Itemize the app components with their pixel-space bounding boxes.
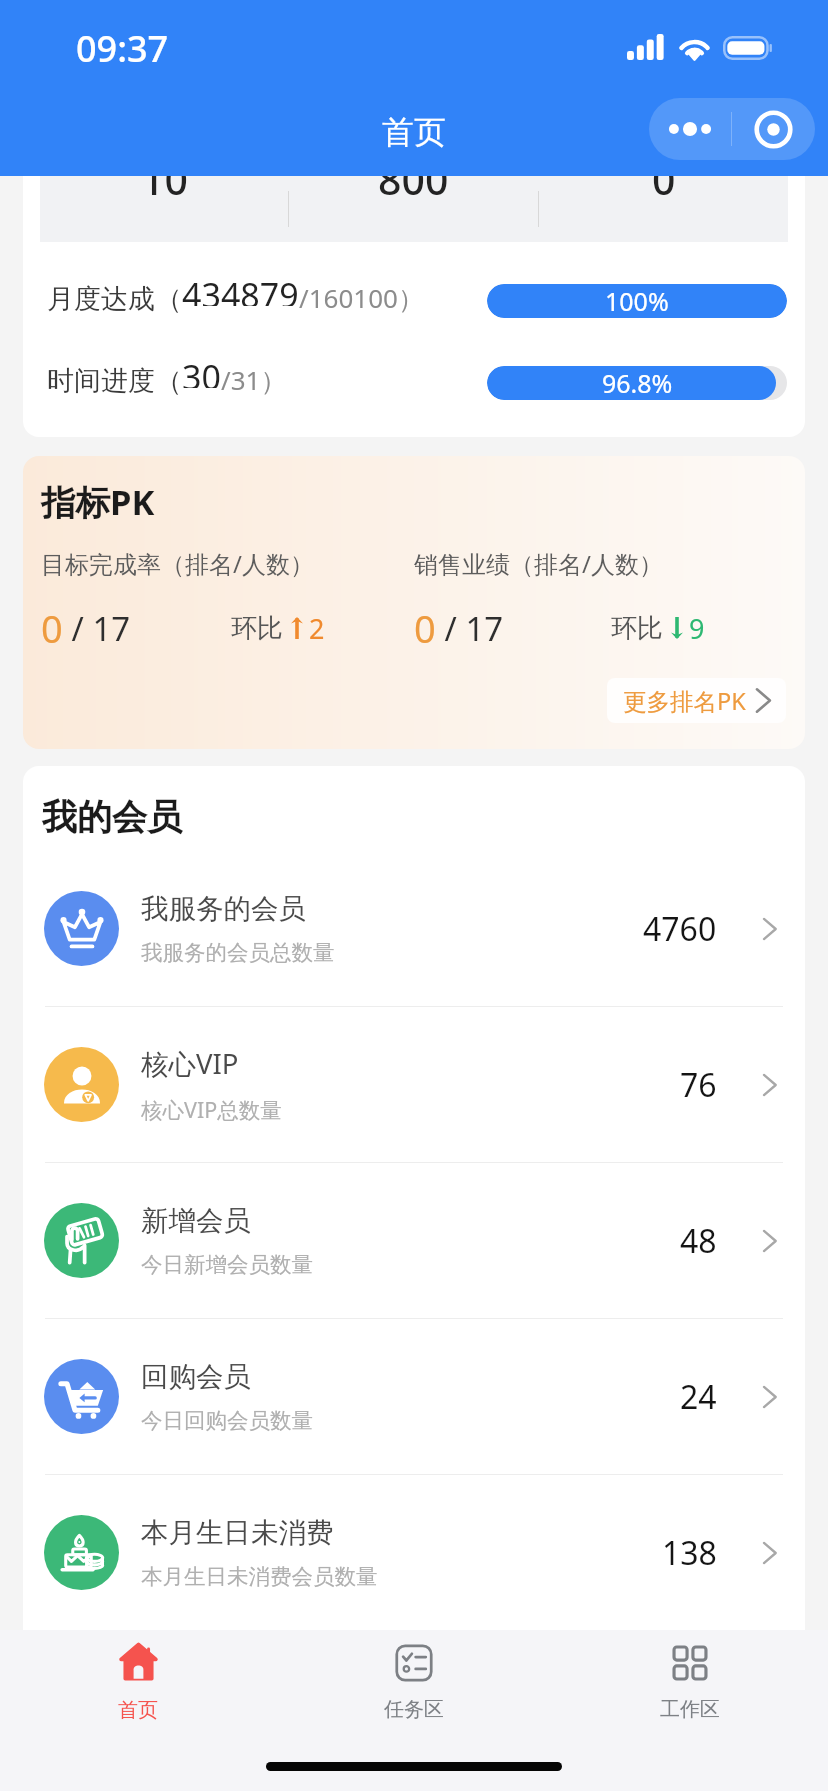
staticText: 24: [680, 1375, 717, 1419]
staticText: 本月生日未消费: [141, 1516, 334, 1551]
button[interactable]: 任务区: [276, 1630, 552, 1730]
staticText: 76: [680, 1063, 717, 1107]
staticText: 0: [41, 602, 63, 654]
button[interactable]: 我服务的会员: [23, 851, 805, 1006]
staticText: 100%: [605, 284, 669, 318]
button[interactable]: More options: [649, 98, 731, 160]
staticText: 我的会员: [42, 795, 182, 839]
staticText: 销售业绩（排名/人数）: [414, 547, 663, 580]
staticText: 首页: [118, 1698, 158, 1723]
staticText: 目标完成率（排名/人数）: [41, 547, 314, 580]
staticText: 本月生日未消费会员数量: [141, 1563, 378, 1590]
staticText: 首页: [382, 112, 446, 152]
button[interactable]: 核心VIP: [23, 1007, 805, 1162]
staticText: 我服务的会员: [141, 892, 306, 927]
staticText: 核心VIP总数量: [141, 1095, 282, 1124]
button[interactable]: 本月生日未消费: [23, 1475, 805, 1630]
staticText: 回购会员: [141, 1360, 251, 1395]
staticText: 0: [652, 176, 676, 207]
staticText: 4760: [643, 907, 717, 951]
staticText: / 17: [436, 606, 504, 651]
staticText: 96.8%: [602, 366, 673, 400]
staticText: 434879: [182, 272, 299, 306]
staticText: 今日新增会员数量: [141, 1251, 313, 1278]
staticText: 任务区: [384, 1697, 444, 1722]
staticText: /160100）: [299, 280, 424, 314]
staticText: 今日回购会员数量: [141, 1407, 313, 1434]
staticText: 工作区: [660, 1697, 720, 1722]
staticText: 核心VIP: [141, 1045, 239, 1083]
staticText: 指标PK: [41, 478, 155, 525]
staticText: 2: [309, 610, 325, 647]
button[interactable]: 工作区: [552, 1630, 828, 1730]
staticText: 30: [182, 354, 221, 388]
staticText: （: [155, 282, 182, 316]
staticText: 09:37: [76, 24, 169, 73]
button[interactable]: Close mini program: [732, 98, 815, 160]
staticText: 我服务的会员总数量: [141, 939, 335, 966]
staticText: 时间进度: [47, 364, 155, 398]
staticText: 更多排名PK: [623, 685, 746, 717]
staticText: / 17: [63, 606, 131, 651]
staticText: 月度达成: [47, 282, 155, 316]
button[interactable]: 首页: [0, 1630, 276, 1730]
staticText: 800: [378, 176, 449, 207]
staticText: 0: [414, 602, 436, 654]
staticText: 48: [680, 1219, 717, 1263]
staticText: /31）: [221, 362, 287, 396]
staticText: 138: [662, 1531, 717, 1575]
staticText: 9: [689, 610, 705, 647]
button[interactable]: 新增会员: [23, 1163, 805, 1318]
staticText: 10: [141, 176, 188, 207]
staticText: 环比: [611, 612, 663, 645]
button[interactable]: 更多排名PK: [607, 678, 786, 723]
staticText: 环比: [231, 612, 283, 645]
staticText: （: [155, 364, 182, 398]
button[interactable]: 回购会员: [23, 1319, 805, 1474]
staticText: 新增会员: [141, 1204, 251, 1239]
